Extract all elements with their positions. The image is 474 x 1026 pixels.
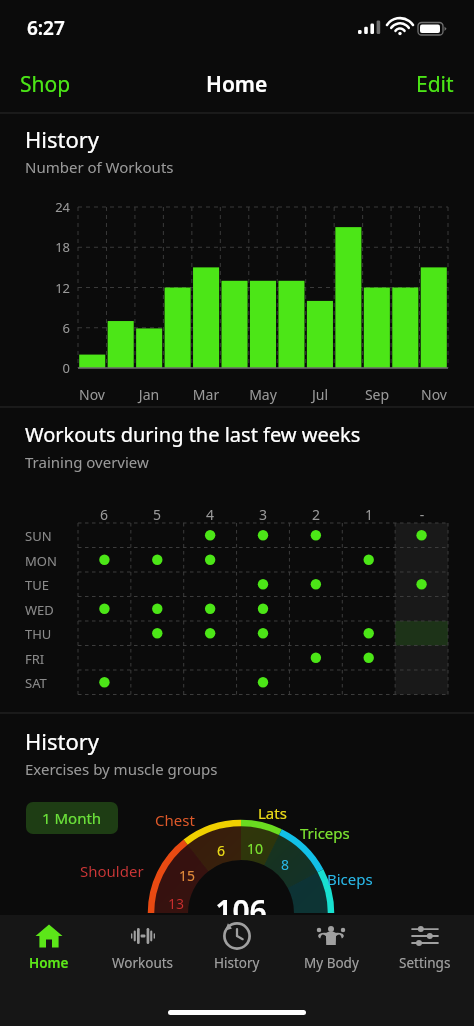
staticText: 5 — [141, 505, 173, 524]
staticText: SAT — [25, 674, 47, 692]
staticText: THU — [25, 625, 52, 643]
staticText: Nov — [412, 385, 456, 404]
staticText: Training overview — [25, 452, 149, 472]
staticText: Exercises by muscle groups — [25, 759, 218, 779]
button[interactable]: Settings — [380, 921, 470, 990]
staticText: History — [25, 726, 100, 756]
staticText: Jul — [298, 385, 342, 404]
staticText: May — [241, 385, 285, 404]
staticText: 18 — [44, 238, 70, 256]
staticText: 10 — [240, 839, 270, 858]
staticText: My Body — [304, 954, 359, 972]
staticText: Mar — [184, 385, 228, 404]
staticText: 3 — [247, 505, 279, 524]
staticText: Chest — [155, 810, 195, 830]
button[interactable]: My Body — [286, 921, 376, 990]
staticText: Sep — [355, 385, 399, 404]
staticText: Triceps — [300, 823, 350, 843]
staticText: 1 Month — [42, 808, 102, 828]
button[interactable]: Edit — [396, 62, 474, 107]
staticText: 106 — [196, 890, 286, 931]
button[interactable]: Workouts — [98, 921, 188, 990]
staticText: Shoulder — [80, 861, 144, 881]
staticText: FRI — [25, 650, 45, 668]
staticText: Lats — [258, 803, 287, 823]
staticText: WED — [25, 601, 54, 619]
staticText: Edit — [416, 70, 454, 99]
staticText: Jan — [127, 385, 171, 404]
staticText: 15 — [172, 866, 202, 885]
staticText: 6 — [44, 319, 70, 337]
staticText: 8 — [270, 855, 300, 874]
button[interactable]: 1 Month — [26, 802, 118, 834]
staticText: Workouts during the last few weeks — [25, 421, 361, 448]
staticText: 6 — [88, 505, 120, 524]
staticText: 1 — [353, 505, 385, 524]
staticText: Home — [29, 954, 69, 972]
button[interactable]: Shop — [0, 62, 91, 107]
staticText: Biceps — [327, 869, 373, 889]
button[interactable]: Home — [4, 921, 94, 990]
staticText: Number of Workouts — [25, 157, 174, 177]
staticText: Shop — [20, 70, 71, 99]
staticText: Home — [206, 70, 268, 99]
staticText: Settings — [399, 954, 451, 972]
staticText: Workouts — [112, 954, 174, 972]
staticText: 4 — [194, 505, 226, 524]
staticText: 13 — [161, 894, 191, 913]
staticText: MON — [25, 552, 57, 570]
staticText: 6:27 — [27, 15, 65, 41]
staticText: History — [214, 954, 260, 972]
staticText: SUN — [25, 527, 52, 545]
staticText: 24 — [44, 198, 70, 216]
staticText: History — [25, 124, 100, 154]
staticText: 12 — [44, 279, 70, 297]
staticText: Nov — [70, 385, 114, 404]
staticText: 0 — [44, 359, 70, 377]
staticText: 6 — [206, 841, 236, 860]
staticText: 2 — [300, 505, 332, 524]
staticText: TUE — [25, 576, 49, 594]
button[interactable]: History — [192, 921, 282, 990]
staticText: - — [406, 505, 438, 524]
